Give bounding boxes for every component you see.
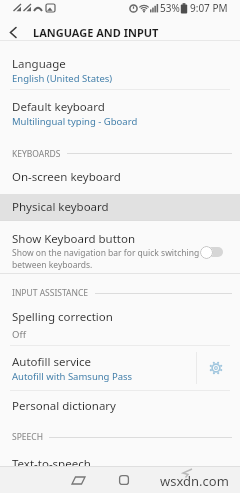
button[interactable] <box>0 20 26 45</box>
button[interactable] <box>66 468 90 492</box>
staticText: Spelling correction <box>12 309 113 325</box>
staticText: between keyboards. <box>12 259 93 271</box>
button[interactable]: Personal dictionary <box>0 391 240 421</box>
staticText: Autofill service <box>12 354 91 370</box>
staticText: Off <box>12 328 26 341</box>
staticText: Multilingual typing - Gboard <box>12 115 138 128</box>
staticText: Physical keyboard <box>12 199 109 215</box>
staticText: Language <box>12 56 66 72</box>
staticText: Autofill with Samsung Pass <box>12 370 133 383</box>
button[interactable] <box>197 346 240 390</box>
button[interactable] <box>112 468 136 492</box>
staticText: Default keyboard <box>12 99 105 115</box>
button[interactable]: Show Keyboard button <box>0 221 240 273</box>
staticText: LANGUAGE AND INPUT <box>33 25 159 40</box>
staticText: 9:07 PM <box>190 1 228 15</box>
staticText: INPUT ASSISTANCE <box>12 287 89 299</box>
button[interactable]: On-screen keyboard <box>0 164 240 194</box>
staticText: On-screen keyboard <box>12 169 121 185</box>
button[interactable]: Spelling correction <box>0 304 240 345</box>
button[interactable] <box>200 245 223 259</box>
button[interactable]: Default keyboard <box>0 90 240 137</box>
button[interactable]: Physical keyboard <box>0 194 240 220</box>
staticText: Text-to-speech <box>12 456 91 472</box>
staticText: Personal dictionary <box>12 398 116 414</box>
staticText: Show Keyboard button <box>12 231 136 247</box>
staticText: KEYBOARDS <box>12 148 61 160</box>
staticText: SPEECH <box>12 431 43 443</box>
staticText: Show on the navigation bar for quick swi… <box>12 247 200 259</box>
staticText: 53% <box>160 1 180 15</box>
button[interactable]: Text-to-speech <box>0 447 240 487</box>
button[interactable]: Autofill service <box>0 346 240 390</box>
button[interactable]: Language <box>0 41 240 89</box>
staticText: wsxdn.com <box>160 472 229 490</box>
staticText: English (United States) <box>12 72 113 85</box>
